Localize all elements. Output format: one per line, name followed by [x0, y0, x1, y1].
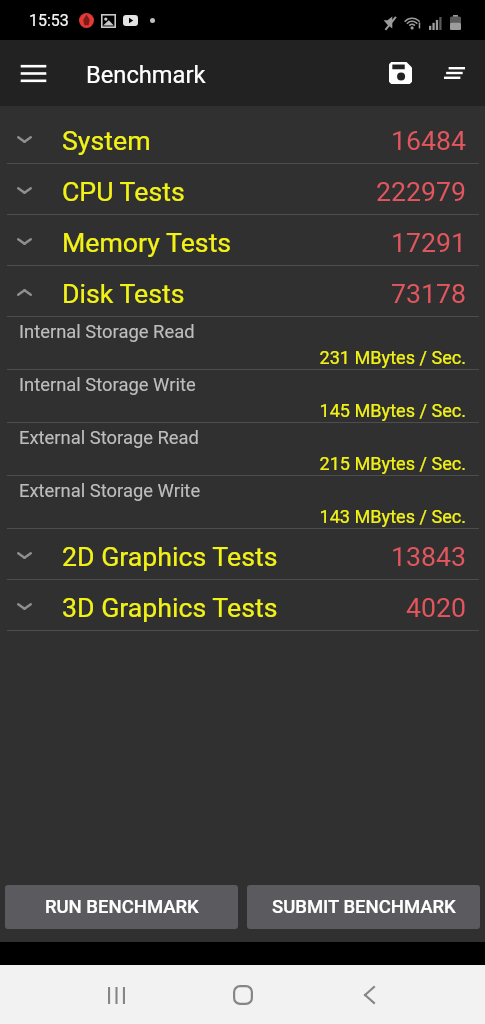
- button[interactable]: Save results: [373, 46, 427, 100]
- staticText: 215 MBytes / Sec.: [19, 453, 466, 474]
- staticText: Disk Tests: [62, 278, 185, 309]
- staticText: 15:53: [29, 11, 69, 30]
- button[interactable]: 3D Graphics Tests: [0, 580, 485, 631]
- staticText: 17291: [391, 227, 466, 258]
- button[interactable]: Internal Storage Read: [0, 317, 485, 370]
- button[interactable]: System: [0, 113, 485, 164]
- button[interactable]: CPU Tests: [0, 164, 485, 215]
- button[interactable]: Disk Tests: [0, 266, 485, 317]
- staticText: External Storage Read: [19, 427, 199, 449]
- button[interactable]: Home: [221, 973, 265, 1017]
- button[interactable]: Internal Storage Write: [0, 370, 485, 423]
- staticText: RUN BENCHMARK: [45, 896, 199, 918]
- staticText: 13843: [391, 541, 466, 572]
- staticText: 2D Graphics Tests: [62, 541, 278, 572]
- button[interactable]: Recent apps: [94, 973, 138, 1017]
- staticText: CPU Tests: [62, 176, 185, 207]
- button[interactable]: 2D Graphics Tests: [0, 529, 485, 580]
- staticText: 73178: [391, 278, 466, 309]
- button[interactable]: External Storage Write: [0, 476, 485, 529]
- staticText: 4020: [406, 592, 466, 623]
- button[interactable]: RUN BENCHMARK: [5, 885, 238, 929]
- staticText: Memory Tests: [62, 227, 232, 258]
- staticText: 231 MBytes / Sec.: [19, 347, 466, 368]
- staticText: Benchmark: [86, 61, 206, 89]
- button[interactable]: Sort: [427, 46, 481, 100]
- staticText: 143 MBytes / Sec.: [19, 506, 466, 527]
- staticText: 3D Graphics Tests: [62, 592, 278, 623]
- staticText: 145 MBytes / Sec.: [19, 400, 466, 421]
- staticText: System: [62, 125, 151, 156]
- button[interactable]: Memory Tests: [0, 215, 485, 266]
- staticText: External Storage Write: [19, 480, 201, 502]
- staticText: Internal Storage Read: [19, 321, 195, 343]
- staticText: 16484: [391, 125, 466, 156]
- staticText: Internal Storage Write: [19, 374, 196, 396]
- button[interactable]: Open navigation menu: [9, 49, 57, 97]
- button[interactable]: SUBMIT BENCHMARK: [247, 885, 480, 929]
- button[interactable]: Back: [347, 973, 391, 1017]
- button[interactable]: External Storage Read: [0, 423, 485, 476]
- staticText: SUBMIT BENCHMARK: [272, 896, 456, 918]
- staticText: 222979: [376, 176, 466, 207]
